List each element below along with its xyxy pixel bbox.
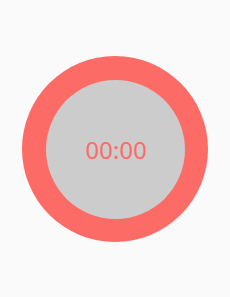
- button[interactable]: Start or stop timer: [22, 56, 208, 242]
- staticText: 00:00: [85, 133, 147, 166]
